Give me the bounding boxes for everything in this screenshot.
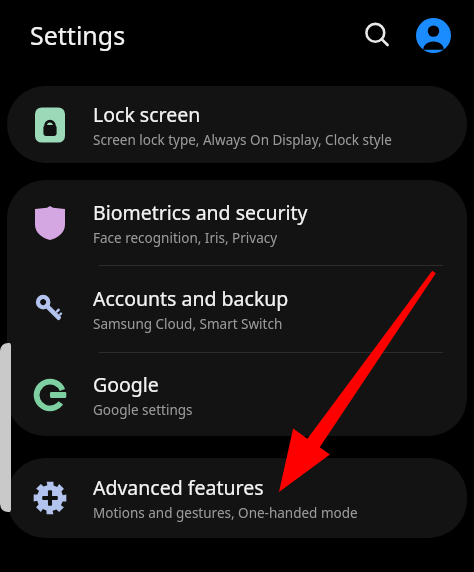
- staticText: Settings: [30, 18, 126, 52]
- staticText: Biometrics and security: [93, 199, 308, 226]
- button[interactable]: Biometrics and security: [7, 180, 467, 265]
- staticText: Screen lock type, Always On Display, Clo…: [93, 131, 392, 149]
- button[interactable]: Advanced features: [7, 458, 467, 538]
- staticText: Advanced features: [93, 474, 264, 501]
- staticText: Accounts and backup: [93, 285, 289, 312]
- staticText: Samsung Cloud, Smart Switch: [93, 315, 283, 333]
- button[interactable]: Account: [410, 12, 456, 58]
- staticText: Google settings: [93, 401, 193, 419]
- staticText: Face recognition, Iris, Privacy: [93, 229, 278, 247]
- staticText: Lock screen: [93, 101, 201, 128]
- button[interactable]: Accounts and backup: [7, 266, 467, 352]
- button[interactable]: Lock screen: [7, 86, 467, 163]
- staticText: Motions and gestures, One-handed mode: [93, 504, 358, 522]
- button[interactable]: Search: [354, 12, 400, 58]
- staticText: Google: [93, 371, 159, 398]
- button[interactable]: Google: [7, 353, 467, 436]
